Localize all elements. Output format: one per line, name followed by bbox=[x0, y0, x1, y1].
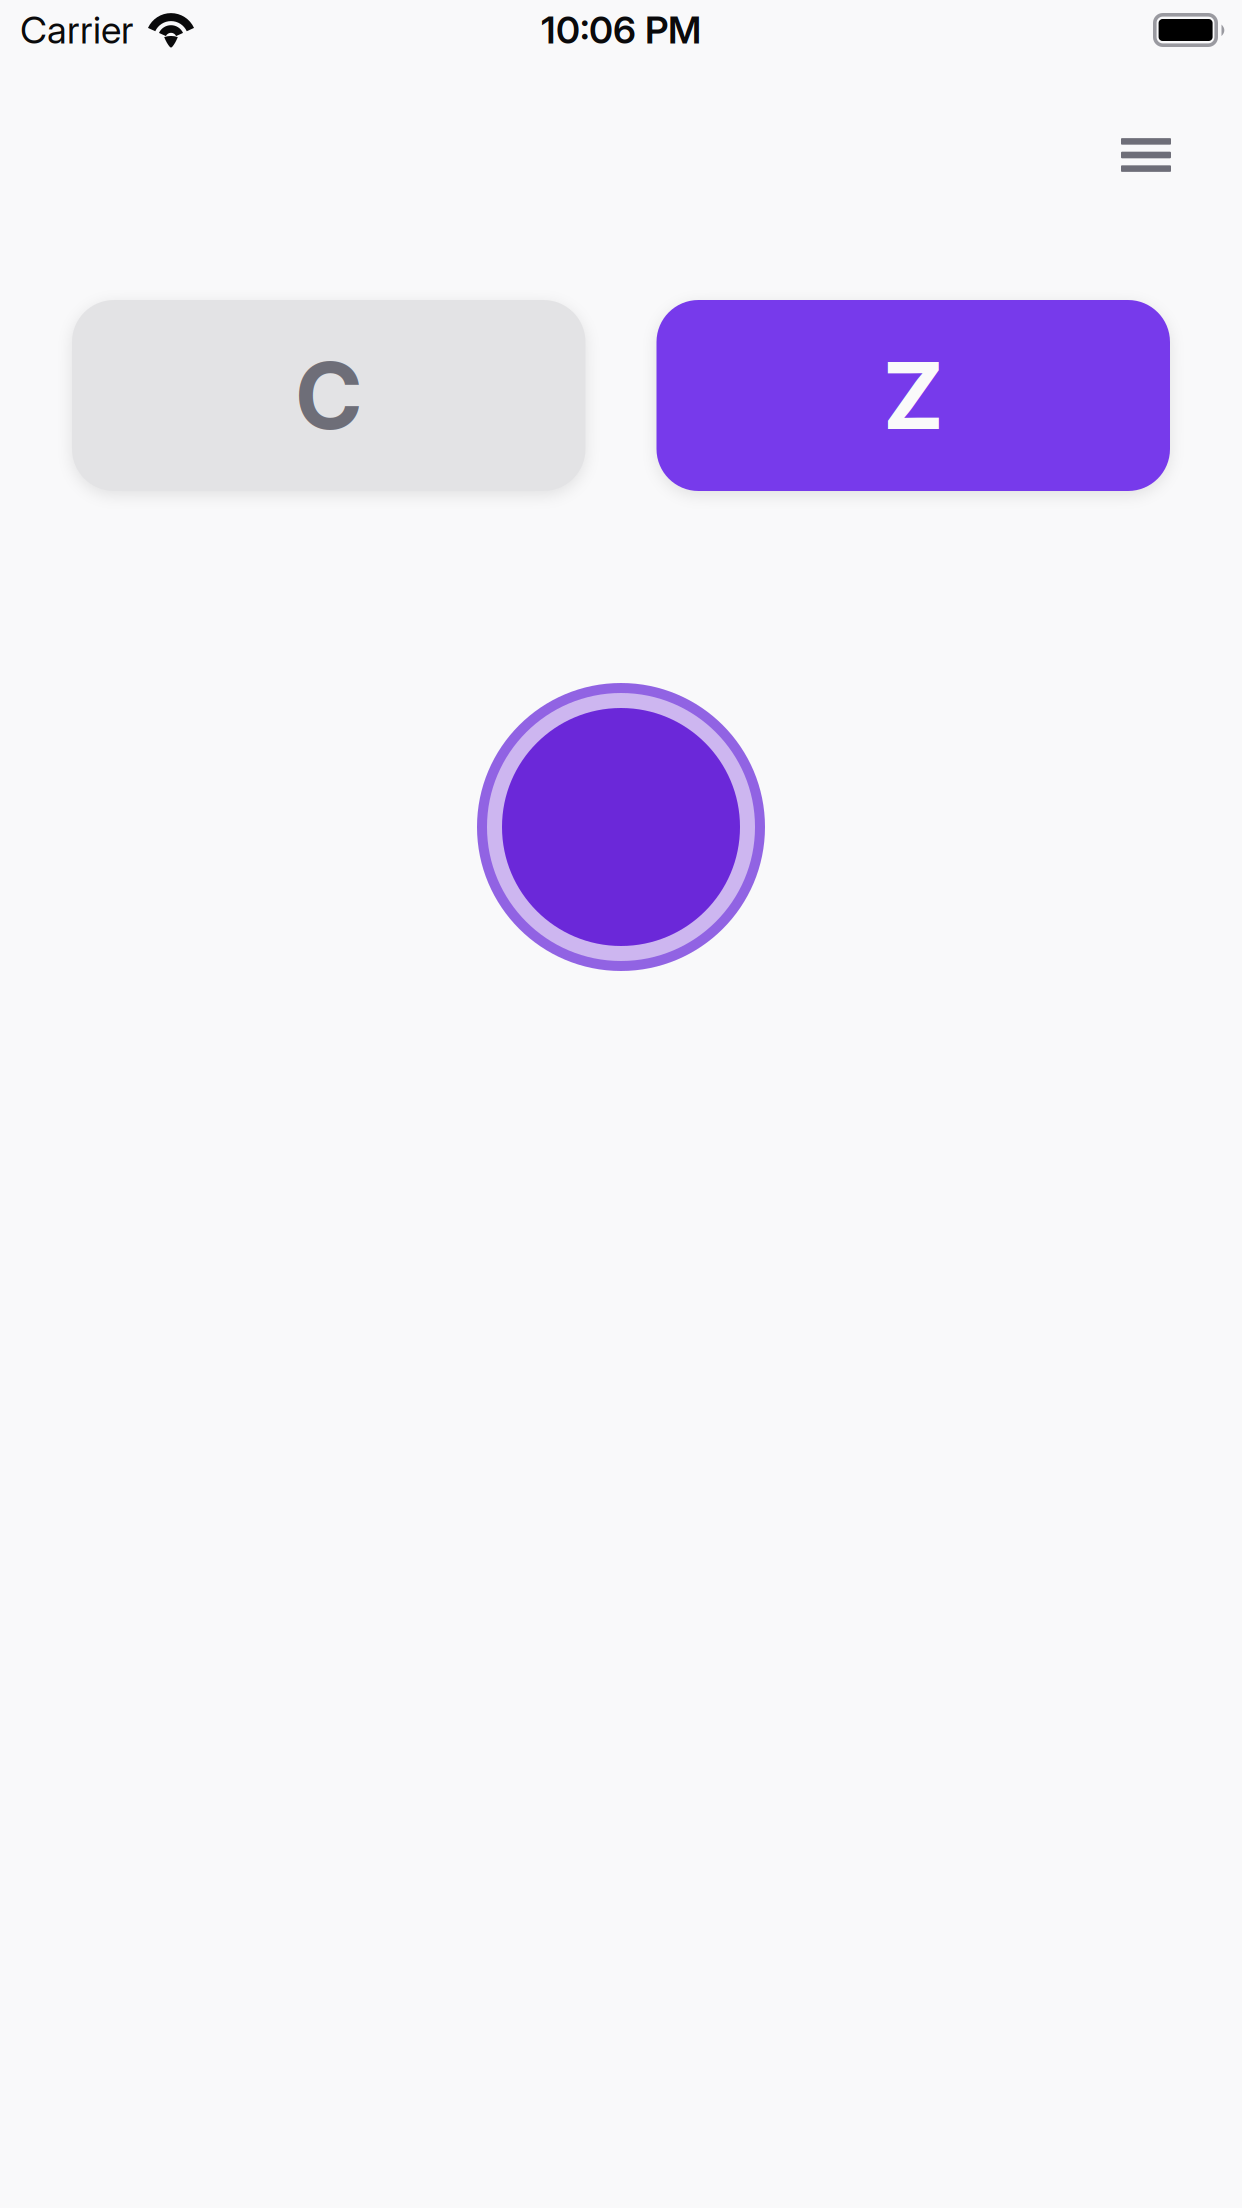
button[interactable]: Menu bbox=[1080, 89, 1212, 221]
button[interactable]: Record bbox=[477, 683, 765, 971]
button[interactable]: C bbox=[72, 300, 585, 491]
staticText: 10:06 PM bbox=[541, 7, 701, 53]
staticText: Z bbox=[883, 340, 944, 451]
staticText: Carrier bbox=[20, 7, 133, 53]
staticText: C bbox=[295, 340, 363, 451]
button[interactable]: Z bbox=[656, 300, 1170, 491]
